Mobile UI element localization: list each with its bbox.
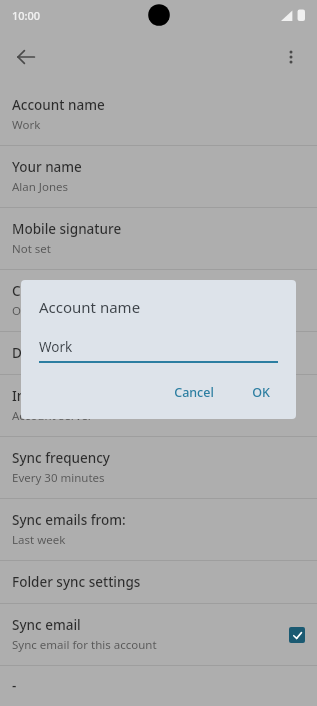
staticText: Mobile signature <box>12 220 122 238</box>
staticText: Sync frequency <box>12 449 110 467</box>
button[interactable]: Your name <box>0 146 317 207</box>
staticText: Work <box>39 338 73 356</box>
staticText: Check frequency <box>12 282 120 300</box>
button[interactable]: Sync emails from: <box>0 499 317 560</box>
staticText: Incoming settings <box>12 387 129 405</box>
staticText: Cancel <box>174 384 214 401</box>
button[interactable]: Mobile signature <box>0 208 317 269</box>
button[interactable]: Folder sync settings <box>0 561 317 603</box>
button[interactable]: Account name <box>0 84 317 145</box>
staticText: Once a day <box>12 303 72 319</box>
button[interactable]: Cancel <box>166 378 222 407</box>
button[interactable]: Check frequency <box>0 270 317 331</box>
button[interactable]: Back <box>6 37 46 77</box>
staticText: Work <box>12 117 41 133</box>
staticText: 10:00 <box>12 8 41 23</box>
staticText: Folder sync settings <box>12 573 141 591</box>
staticText: Account server <box>12 408 93 424</box>
staticText: Last week <box>12 532 66 548</box>
staticText: Your name <box>12 158 82 176</box>
button[interactable]: Incoming settings <box>0 375 317 436</box>
button[interactable]: More options <box>271 37 311 77</box>
button[interactable]: Days to sync <box>0 332 317 374</box>
staticText: Every 30 minutes <box>12 470 105 486</box>
staticText: - <box>12 677 17 695</box>
staticText: Alan Jones <box>12 179 69 195</box>
staticText: Not set <box>12 241 51 257</box>
staticText: Sync emails from: <box>12 511 126 529</box>
staticText: Sync email for this account <box>12 637 157 653</box>
staticText: Account name <box>12 96 105 114</box>
button[interactable]: Sync email <box>0 604 317 665</box>
staticText: Days to sync <box>12 344 93 362</box>
button[interactable]: Sync frequency <box>0 437 317 498</box>
staticText: Sync email <box>12 616 81 634</box>
staticText: Account name <box>39 297 141 317</box>
staticText: OK <box>252 384 270 401</box>
button[interactable]: OK <box>244 378 278 407</box>
